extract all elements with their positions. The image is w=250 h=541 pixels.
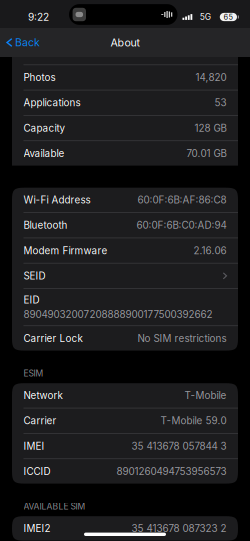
- staticText: 70.01 GB: [186, 147, 226, 159]
- staticText: 9:22: [28, 11, 49, 23]
- button[interactable]: Carrier Lock: [12, 326, 238, 351]
- button[interactable]: Capacity: [12, 116, 238, 140]
- button[interactable]: Applications: [12, 90, 238, 115]
- staticText: 35 413678 087323 2: [131, 522, 226, 534]
- button[interactable]: Back: [0, 30, 40, 55]
- staticText: 89049032007208888900177500392662: [23, 308, 212, 320]
- staticText: 60:0F:6B:AF:86:C8: [137, 194, 226, 206]
- staticText: AVAILABLE SIM: [23, 501, 85, 511]
- staticText: Applications: [23, 97, 80, 109]
- staticText: About: [110, 36, 139, 49]
- staticText: Modem Firmware: [23, 245, 107, 256]
- staticText: Capacity: [23, 122, 65, 134]
- button[interactable]: Modem Firmware: [12, 238, 238, 263]
- button[interactable]: Available: [12, 141, 238, 166]
- staticText: EID: [23, 294, 39, 306]
- staticText: IMEI: [23, 440, 44, 452]
- button[interactable]: Network: [12, 383, 238, 408]
- staticText: Back: [15, 36, 40, 49]
- staticText: 128 GB: [194, 122, 226, 134]
- staticText: No SIM restrictions: [137, 332, 226, 344]
- staticText: 8901260494753956573: [116, 465, 226, 477]
- staticText: 60:0F:6B:C0:AD:94: [136, 219, 226, 231]
- button[interactable]: IMEI: [12, 434, 238, 458]
- staticText: T-Mobile 59.0: [160, 415, 226, 427]
- staticText: ESIM: [23, 368, 43, 378]
- staticText: Wi-Fi Address: [23, 194, 90, 206]
- staticText: Carrier Lock: [23, 332, 82, 344]
- button[interactable]: EID: [12, 289, 238, 325]
- staticText: ICCID: [23, 465, 50, 477]
- staticText: 5G: [200, 12, 211, 22]
- staticText: 14,820: [195, 71, 226, 83]
- button[interactable]: Bluetooth: [12, 213, 238, 237]
- staticText: 65: [223, 12, 233, 21]
- staticText: 35 413678 057844 3: [131, 440, 226, 452]
- staticText: Available: [23, 147, 64, 159]
- staticText: Bluetooth: [23, 219, 67, 231]
- button[interactable]: ICCID: [12, 459, 238, 484]
- button[interactable]: IMEI2: [12, 516, 238, 541]
- staticText: IMEI2: [23, 522, 50, 534]
- staticText: Photos: [23, 71, 55, 83]
- staticText: 2.16.06: [193, 245, 226, 256]
- button[interactable]: Carrier: [12, 408, 238, 433]
- button[interactable]: Photos: [12, 65, 238, 90]
- staticText: 53: [214, 97, 226, 109]
- staticText: T-Mobile: [184, 389, 226, 401]
- staticText: Network: [23, 389, 62, 401]
- button[interactable]: SEID: [12, 264, 238, 288]
- button[interactable]: Wi-Fi Address: [12, 188, 238, 212]
- staticText: SEID: [23, 270, 45, 282]
- staticText: Carrier: [23, 415, 56, 427]
